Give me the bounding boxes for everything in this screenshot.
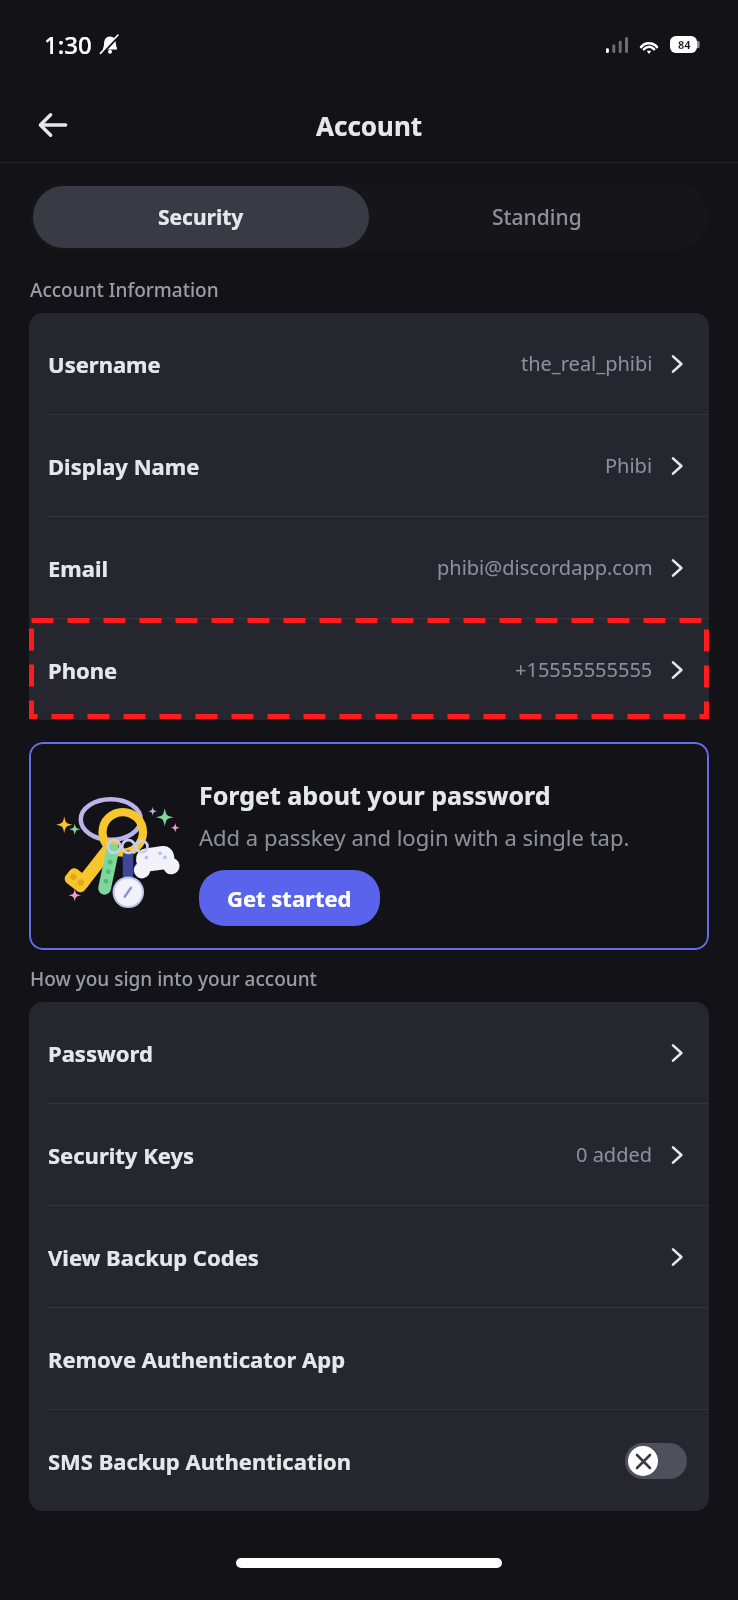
staticText: Account Information — [30, 277, 219, 303]
button[interactable]: SMS Backup Authentication toggle — [625, 1443, 687, 1479]
staticText: Phibi — [605, 452, 653, 479]
staticText: Forget about your password — [199, 778, 551, 812]
staticText: Security Keys — [48, 1140, 195, 1170]
button[interactable]: Get started — [199, 870, 380, 926]
staticText: Remove Authenticator App — [48, 1344, 346, 1374]
staticText: View Backup Codes — [48, 1242, 259, 1272]
button[interactable]: Username — [29, 313, 709, 414]
staticText: the_real_phibi — [521, 350, 653, 377]
staticText: Email — [48, 553, 109, 583]
staticText: 0 added — [576, 1141, 653, 1168]
staticText: 1:30 — [44, 28, 92, 61]
staticText: +15555555555 — [515, 656, 653, 683]
button[interactable]: View Backup Codes — [29, 1206, 709, 1307]
button[interactable]: Security — [33, 186, 369, 248]
staticText: SMS Backup Authentication — [48, 1446, 352, 1476]
staticText: Add a passkey and login with a single ta… — [199, 822, 630, 852]
staticText: Standing — [492, 203, 582, 232]
staticText: Password — [48, 1038, 153, 1068]
button[interactable]: Phone — [29, 619, 709, 720]
staticText: Display Name — [48, 451, 200, 481]
staticText: 84 — [678, 37, 691, 52]
staticText: Get started — [227, 883, 352, 913]
button[interactable]: Email — [29, 517, 709, 618]
button[interactable]: Remove Authenticator App — [29, 1308, 709, 1409]
staticText: Phone — [48, 655, 118, 685]
staticText: phibi@discordapp.com — [437, 554, 653, 581]
button[interactable]: SMS Backup Authentication — [29, 1410, 709, 1511]
staticText: How you sign into your account — [30, 966, 317, 992]
button[interactable]: Security Keys — [29, 1104, 709, 1205]
button[interactable]: Password — [29, 1002, 709, 1103]
button[interactable]: Forget about your password — [29, 742, 709, 950]
button[interactable]: Standing — [369, 186, 705, 248]
button[interactable]: Back — [22, 94, 84, 156]
button[interactable]: Display Name — [29, 415, 709, 516]
staticText: Username — [48, 349, 161, 379]
staticText: Account — [316, 108, 423, 143]
staticText: Security — [158, 203, 244, 232]
